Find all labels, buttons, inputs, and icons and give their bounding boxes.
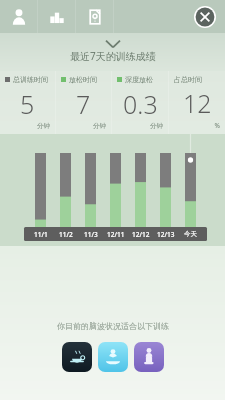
staticText: 12	[183, 86, 212, 120]
staticText: 11/3	[84, 230, 98, 239]
staticText: 11/2	[59, 230, 73, 239]
button[interactable]: Meditation training	[98, 342, 128, 372]
staticText: 放松时间	[69, 75, 97, 84]
button[interactable]: Relax training	[62, 342, 92, 372]
button[interactable]: Focus training	[134, 342, 164, 372]
staticText: 深度放松	[125, 75, 153, 84]
staticText: 总训练时间	[13, 75, 48, 84]
staticText: 5	[20, 87, 35, 121]
staticText: 今天	[184, 230, 197, 238]
staticText: 7	[76, 87, 91, 121]
staticText: 11/1	[34, 230, 48, 239]
staticText: 你目前的脑波状况适合以下训练	[57, 321, 169, 331]
staticText: 分钟	[117, 122, 163, 130]
button[interactable]: Profile	[0, 0, 37, 33]
button[interactable]: 总训练时间	[0, 71, 55, 134]
staticText: 最近7天的训练成绩	[70, 49, 156, 63]
staticText: 分钟	[61, 122, 106, 130]
staticText: 0.3	[123, 87, 158, 121]
button[interactable]: Close	[193, 5, 217, 29]
button[interactable]: Ranking	[38, 0, 75, 33]
button[interactable]: 占总时间	[169, 71, 225, 134]
staticText: 12/12	[132, 230, 150, 239]
staticText: 12/11	[107, 230, 125, 239]
staticText: 占总时间	[174, 75, 202, 84]
staticText: 分钟	[5, 122, 50, 130]
button[interactable]: 放松时间	[56, 71, 111, 134]
staticText: 12/13	[157, 230, 175, 239]
staticText: %	[174, 121, 220, 130]
button[interactable]: Help	[76, 0, 113, 33]
button[interactable]: 深度放松	[112, 71, 168, 134]
